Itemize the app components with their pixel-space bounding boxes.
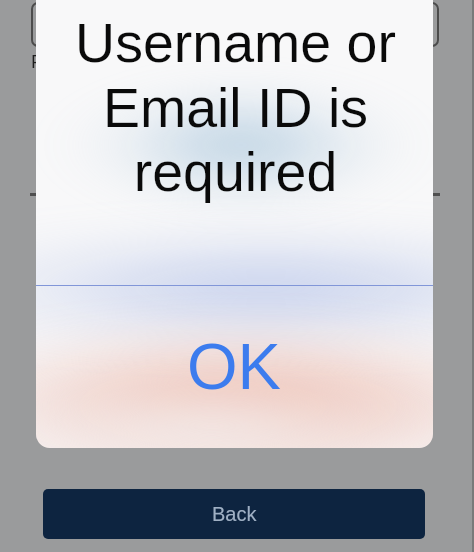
staticText: Password: [31, 51, 113, 72]
staticText: Username or Email ID is required: [45, 12, 426, 202]
button[interactable]: Back: [43, 489, 425, 539]
staticText: Back: [212, 503, 257, 525]
staticText: OK: [187, 330, 281, 403]
button[interactable]: OK: [36, 286, 433, 448]
